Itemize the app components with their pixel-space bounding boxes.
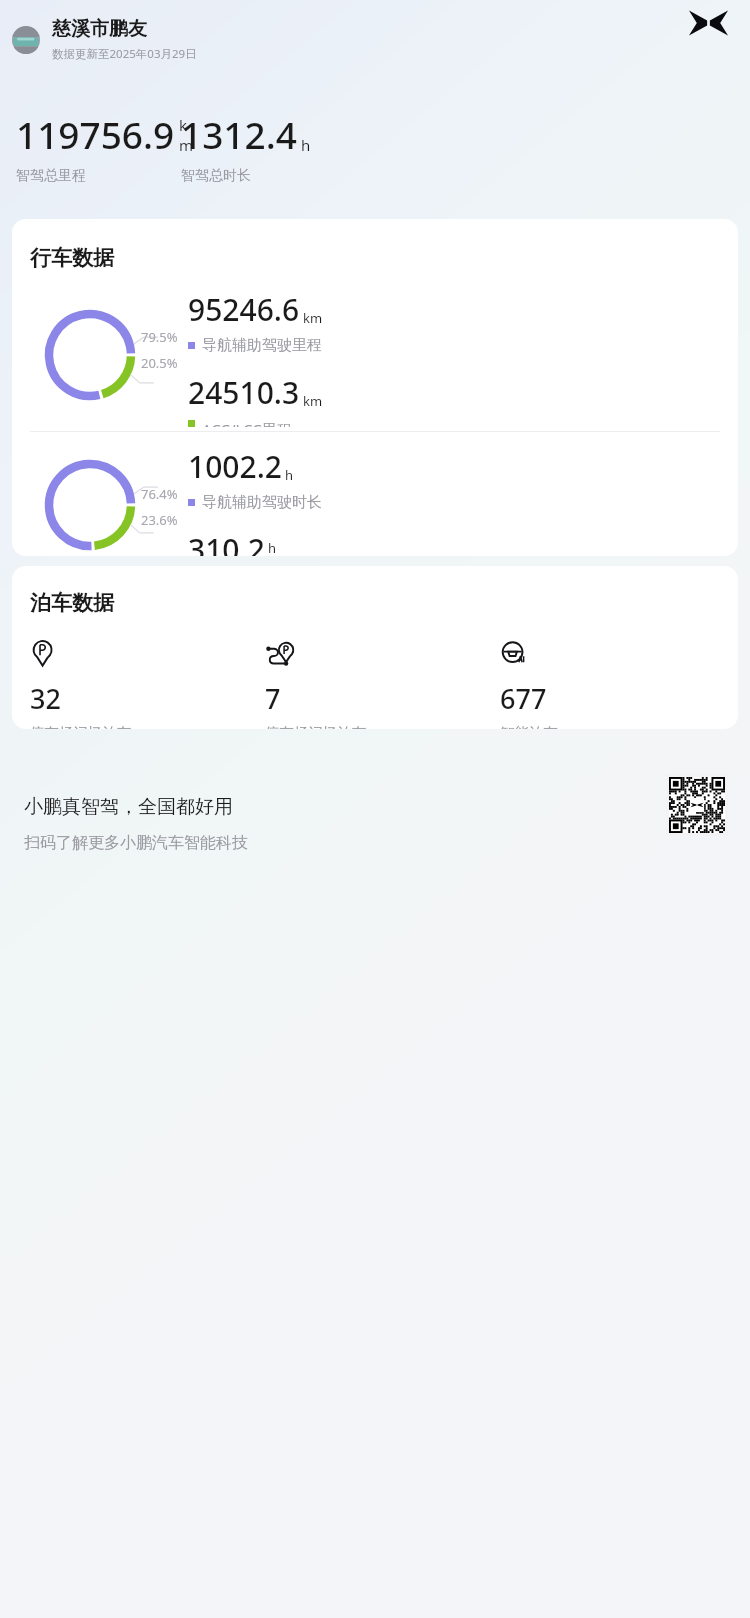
staticText: 停车场记忆泊车 — [265, 724, 367, 729]
staticText: 泊车数据 — [30, 590, 114, 616]
staticText: h — [285, 466, 294, 484]
staticText: 310.2 — [188, 529, 265, 556]
staticText: 停车场记忆泊车 — [30, 724, 132, 729]
staticText: 导航辅助驾驶里程 — [202, 336, 322, 355]
staticText: 智驾总里程 — [16, 167, 86, 185]
button[interactable]: AI smart parking — [500, 638, 587, 729]
staticText: km — [303, 392, 323, 410]
staticText: 1002.2 — [188, 446, 282, 487]
staticText: 32 — [30, 680, 61, 717]
staticText: h — [301, 135, 311, 155]
staticText: 119756.9 — [16, 109, 175, 159]
staticText: 20.5% — [141, 354, 178, 372]
staticText: h — [268, 539, 277, 556]
button[interactable]: Memory parking — [30, 638, 265, 729]
staticText: km — [303, 309, 323, 327]
staticText: 小鹏真智驾，全国都好用 — [24, 795, 233, 819]
staticText: 23.6% — [141, 511, 178, 529]
staticText: 79.5% — [141, 328, 178, 346]
staticText: 智驾总时长 — [181, 167, 251, 185]
button[interactable]: 泊车数据 — [12, 566, 738, 729]
staticText: 智能泊车 — [500, 724, 558, 729]
staticText: ACC/LCC里程 — [202, 419, 292, 427]
staticText: 1312.4 — [181, 109, 297, 159]
button[interactable]: XPeng logo — [689, 10, 728, 36]
staticText: 行车数据 — [30, 245, 114, 271]
staticText: 24510.3 — [188, 372, 300, 413]
staticText: 76.4% — [141, 485, 178, 503]
button[interactable]: 行车数据 — [12, 219, 738, 556]
staticText: 慈溪市鹏友 — [52, 17, 147, 41]
staticText: 导航辅助驾驶时长 — [202, 493, 322, 512]
staticText: 数据更新至2025年03月29日 — [52, 46, 197, 62]
staticText: 677 — [500, 680, 547, 717]
button[interactable]: Route memory parking — [265, 638, 500, 729]
button[interactable]: QR code — [666, 774, 728, 836]
button[interactable]: Profile avatar — [12, 26, 40, 54]
staticText: 95246.6 — [188, 289, 300, 330]
staticText: km — [179, 115, 181, 155]
staticText: 7 — [265, 680, 281, 717]
staticText: 扫码了解更多小鹏汽车智能科技 — [24, 833, 248, 853]
